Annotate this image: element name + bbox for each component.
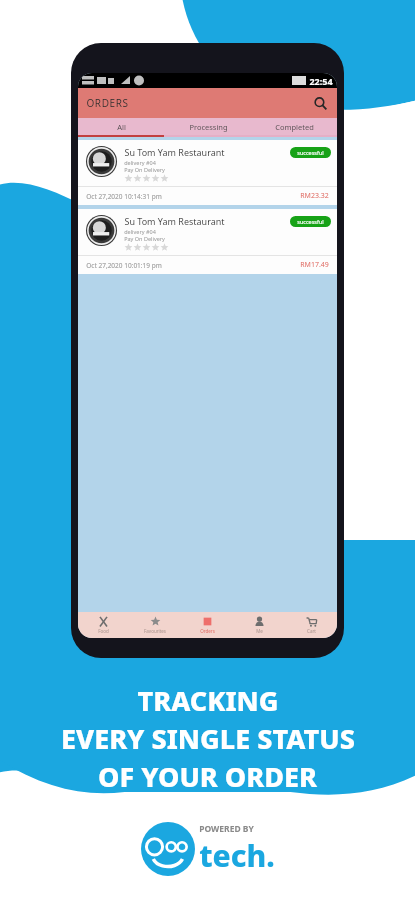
staticText: RM23.32: [300, 191, 329, 201]
staticText: delivery #04: [124, 159, 156, 166]
staticText: ORDERS: [86, 96, 129, 110]
staticText: tech.: [199, 835, 275, 876]
staticText: Su Tom Yam Restaurant: [124, 215, 225, 227]
button[interactable]: Cart: [285, 612, 337, 638]
staticText: Processing: [189, 122, 228, 132]
staticText: Su Tom Yam Restaurant: [124, 146, 225, 158]
button[interactable]: Completed: [251, 118, 337, 135]
staticText: OF YOUR ORDER: [98, 758, 317, 795]
staticText: delivery #04: [124, 228, 156, 235]
staticText: Orders: [200, 628, 215, 634]
button[interactable]: Processing: [165, 118, 251, 135]
staticText: 22:54: [309, 75, 333, 87]
staticText: successful: [297, 149, 324, 156]
button[interactable]: All: [78, 118, 165, 135]
staticText: Pay On Delivery: [124, 235, 165, 242]
staticText: Food: [98, 628, 109, 634]
button[interactable]: Orders: [181, 612, 233, 638]
button[interactable]: Favourites: [129, 612, 181, 638]
staticText: TRACKING: [137, 682, 279, 719]
button[interactable]: Search: [311, 94, 329, 112]
button[interactable]: Me: [233, 612, 285, 638]
staticText: Favourites: [144, 628, 166, 634]
staticText: RM17.49: [300, 260, 329, 270]
staticText: Pay On Delivery: [124, 166, 165, 173]
staticText: POWERED BY: [199, 823, 254, 835]
staticText: Completed: [275, 122, 314, 132]
button[interactable]: Food: [78, 612, 129, 638]
button[interactable]: ORDERS: [78, 88, 337, 118]
staticText: Cart: [307, 628, 316, 634]
staticText: Oct 27,2020 10:01:19 pm: [86, 261, 162, 270]
staticText: successful: [297, 218, 324, 225]
staticText: Oct 27,2020 10:14:31 pm: [86, 192, 162, 201]
button[interactable]: Su Tom Yam Restaurant: [78, 140, 337, 205]
staticText: All: [117, 122, 126, 132]
staticText: Me: [256, 628, 263, 634]
staticText: EVERY SINGLE STATUS: [61, 720, 355, 757]
button[interactable]: Su Tom Yam Restaurant: [78, 209, 337, 274]
